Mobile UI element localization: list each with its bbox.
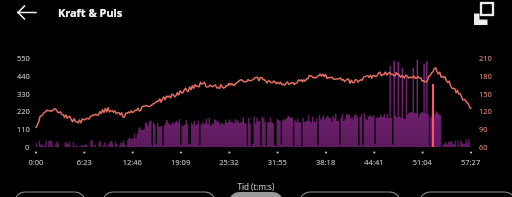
button[interactable]: Tab 5	[420, 192, 512, 197]
button[interactable]: Tab 1	[15, 192, 85, 197]
button[interactable]: Tab 3 selected	[229, 192, 283, 197]
button[interactable]: Compare charts	[470, 0, 512, 28]
button[interactable]: Back	[5, 0, 49, 25]
button[interactable]: Power and heart rate chart	[36, 55, 476, 150]
button[interactable]: Tab 4	[300, 192, 400, 197]
button[interactable]: Tab 2	[103, 192, 215, 197]
